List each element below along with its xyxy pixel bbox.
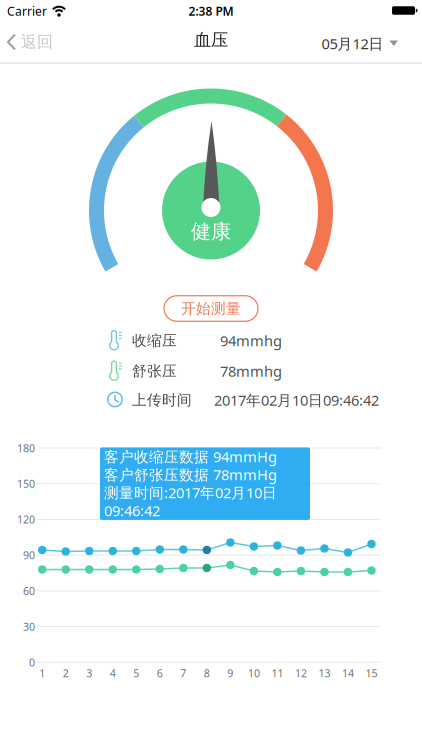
staticText: 13: [318, 666, 330, 680]
staticText: 血压: [194, 29, 228, 51]
staticText: 6: [157, 666, 163, 680]
staticText: 健康: [191, 219, 231, 244]
staticText: 4: [110, 666, 116, 680]
staticText: 返回: [21, 32, 53, 52]
staticText: 120: [17, 512, 35, 526]
staticText: 150: [17, 477, 35, 491]
staticText: 0: [29, 655, 35, 669]
staticText: 30: [23, 619, 35, 634]
staticText: 05月12日: [321, 34, 383, 53]
staticText: 60: [23, 584, 35, 598]
staticText: 10: [248, 666, 260, 680]
button[interactable]: 05月12日: [321, 34, 398, 53]
staticText: 2: [63, 666, 69, 680]
staticText: 测量时间:2017年02月10日: [104, 483, 277, 502]
staticText: 90: [23, 548, 35, 562]
staticText: 5: [133, 666, 139, 680]
staticText: 1: [39, 666, 45, 680]
staticText: 7: [180, 666, 186, 680]
staticText: 开始测量: [181, 299, 241, 317]
staticText: Carrier: [7, 3, 47, 19]
staticText: 09:46:42: [104, 501, 160, 520]
staticText: 11: [271, 666, 283, 680]
staticText: 3: [86, 666, 92, 680]
staticText: 客户舒张压数据 78mmHg: [104, 465, 277, 484]
staticText: 收缩压: [132, 331, 177, 349]
staticText: 2017年02月10日09:46:42: [214, 390, 379, 410]
staticText: 12: [295, 666, 307, 680]
staticText: 2:38 PM: [188, 3, 233, 19]
staticText: 78mmhg: [220, 361, 282, 381]
staticText: 上传时间: [132, 391, 192, 409]
staticText: 舒张压: [132, 362, 177, 380]
staticText: 14: [342, 666, 354, 680]
staticText: 8: [204, 666, 210, 680]
button[interactable]: Back: [7, 32, 53, 52]
button[interactable]: 开始测量: [164, 296, 258, 321]
staticText: 180: [17, 441, 35, 455]
staticText: 9: [227, 666, 233, 680]
staticText: 15: [365, 666, 377, 680]
staticText: 客户收缩压数据 94mmHg: [104, 447, 277, 466]
staticText: 94mmhg: [220, 331, 282, 350]
